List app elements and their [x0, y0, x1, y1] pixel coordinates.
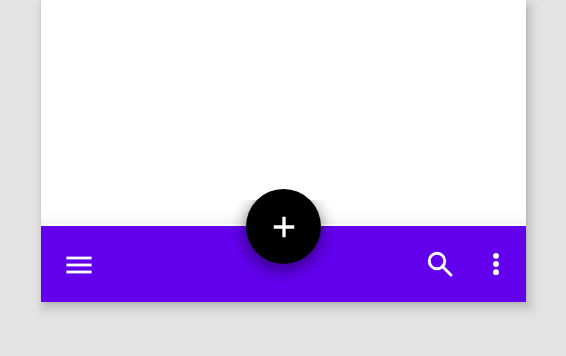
button[interactable]: Search: [413, 237, 461, 285]
button[interactable]: More options: [472, 240, 520, 288]
button[interactable]: Open navigation menu: [55, 241, 103, 289]
button[interactable]: Add: [246, 189, 321, 264]
